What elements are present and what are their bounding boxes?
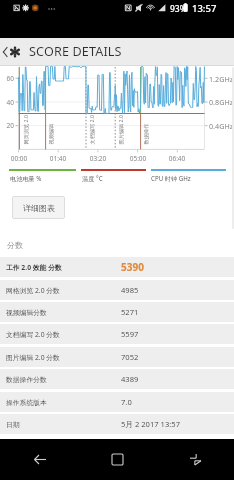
staticText: 日期 [6, 420, 20, 429]
staticText: 4389 [121, 374, 139, 384]
staticText: 7052 [121, 352, 139, 362]
staticText: 06:40 [168, 154, 186, 163]
staticText: 01:40 [49, 154, 67, 163]
staticText: 5597 [121, 329, 139, 339]
staticText: 4985 [121, 285, 139, 295]
button[interactable]: Recent apps [156, 439, 234, 480]
staticText: 数据操作分数 [6, 375, 47, 384]
staticText: 视频编辑 [47, 112, 54, 144]
staticText: 1.2GHz [209, 74, 234, 84]
staticText: 40 [6, 98, 14, 107]
button[interactable]: 操作系统版本 [0, 392, 234, 412]
button[interactable]: Home [78, 439, 156, 480]
staticText: 电池电量 % [10, 174, 42, 182]
button[interactable]: 数据操作分数 [0, 369, 234, 389]
button[interactable]: 日期 [0, 414, 234, 434]
staticText: 60 [6, 74, 14, 83]
staticText: 0.8GHz [209, 97, 234, 107]
staticText: 0.4GHz [209, 121, 234, 131]
staticText: 网格浏览 2.0 分数 [6, 286, 60, 295]
staticText: 视频编辑分数 [6, 308, 47, 317]
staticText: 03:20 [89, 154, 107, 163]
staticText: 93% [170, 3, 187, 15]
staticText: 5月 2 2017 13:57 [121, 419, 180, 429]
staticText: 20 [6, 121, 14, 130]
staticText: 网页浏览 2.0 [21, 112, 28, 144]
staticText: 分数 [7, 240, 23, 250]
button[interactable]: 详细图表 [12, 196, 65, 219]
staticText: 文档编写 2.0 [87, 112, 94, 144]
button[interactable]: Back [0, 439, 78, 480]
button[interactable]: 工作 2.0 效能 分数 [0, 257, 234, 277]
button[interactable]: 网格浏览 2.0 分数 [0, 280, 234, 300]
staticText: 5390 [121, 260, 144, 274]
staticText: 00:00 [10, 154, 28, 163]
staticText: 图片编辑 2.0 分数 [6, 353, 60, 362]
staticText: 7.0 [121, 397, 132, 407]
staticText: 详细图表 [23, 203, 55, 213]
staticText: CPU 时钟 GHz [151, 174, 191, 182]
button[interactable]: Back [0, 38, 9, 66]
staticText: 13:57 [192, 2, 217, 15]
button[interactable]: 文档编写 2.0 分数 [0, 324, 234, 344]
staticText: 图片编辑 2.0 [116, 112, 123, 144]
staticText: 温度 °C [82, 174, 103, 182]
button[interactable]: 图片编辑 2.0 分数 [0, 347, 234, 367]
staticText: 文档编写 2.0 分数 [6, 330, 60, 339]
staticText: 5271 [121, 307, 139, 317]
staticText: 操作系统版本 [6, 398, 47, 407]
staticText: SCORE DETAILS [29, 43, 122, 60]
staticText: 05:00 [129, 154, 147, 163]
button[interactable]: 视频编辑分数 [0, 302, 234, 322]
staticText: 工作 2.0 效能 分数 [6, 263, 62, 272]
staticText: 数据操作 [142, 112, 149, 144]
